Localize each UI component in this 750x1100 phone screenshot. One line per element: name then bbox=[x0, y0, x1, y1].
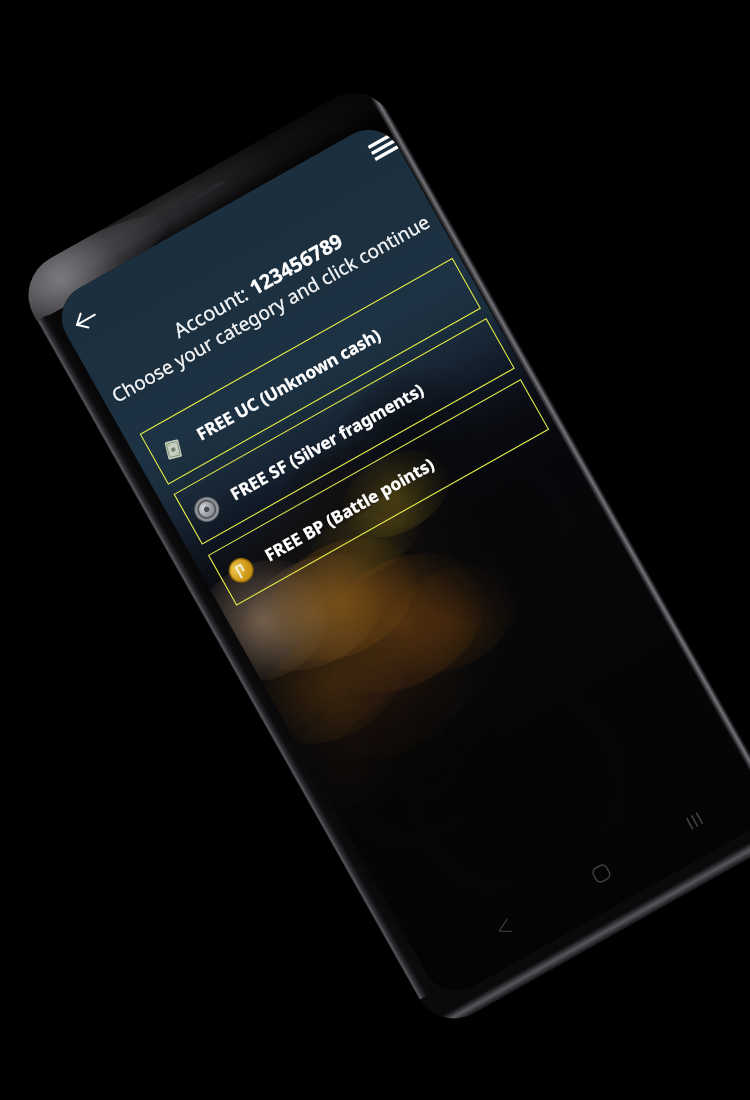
button[interactable]: Back bbox=[479, 903, 528, 952]
staticText: FREE SF (Silver fragments) bbox=[226, 378, 428, 505]
staticText: Account: bbox=[168, 278, 257, 344]
button[interactable]: Back bbox=[56, 290, 116, 350]
staticText: FREE BP (Battle points) bbox=[260, 452, 439, 566]
button[interactable]: FREE UC (Unknown cash) bbox=[140, 258, 481, 485]
staticText: 123456789 bbox=[244, 227, 347, 301]
button[interactable]: FREE SF (Silver fragments) bbox=[174, 318, 515, 545]
button[interactable]: Home bbox=[576, 849, 625, 898]
staticText: FREE UC (Unknown cash) bbox=[192, 323, 385, 445]
staticText: Choose your category and click continue bbox=[107, 209, 434, 409]
button[interactable]: Recents bbox=[669, 796, 718, 845]
button[interactable]: FREE BP (Battle points) bbox=[208, 379, 549, 606]
button[interactable]: Menu bbox=[356, 123, 404, 174]
